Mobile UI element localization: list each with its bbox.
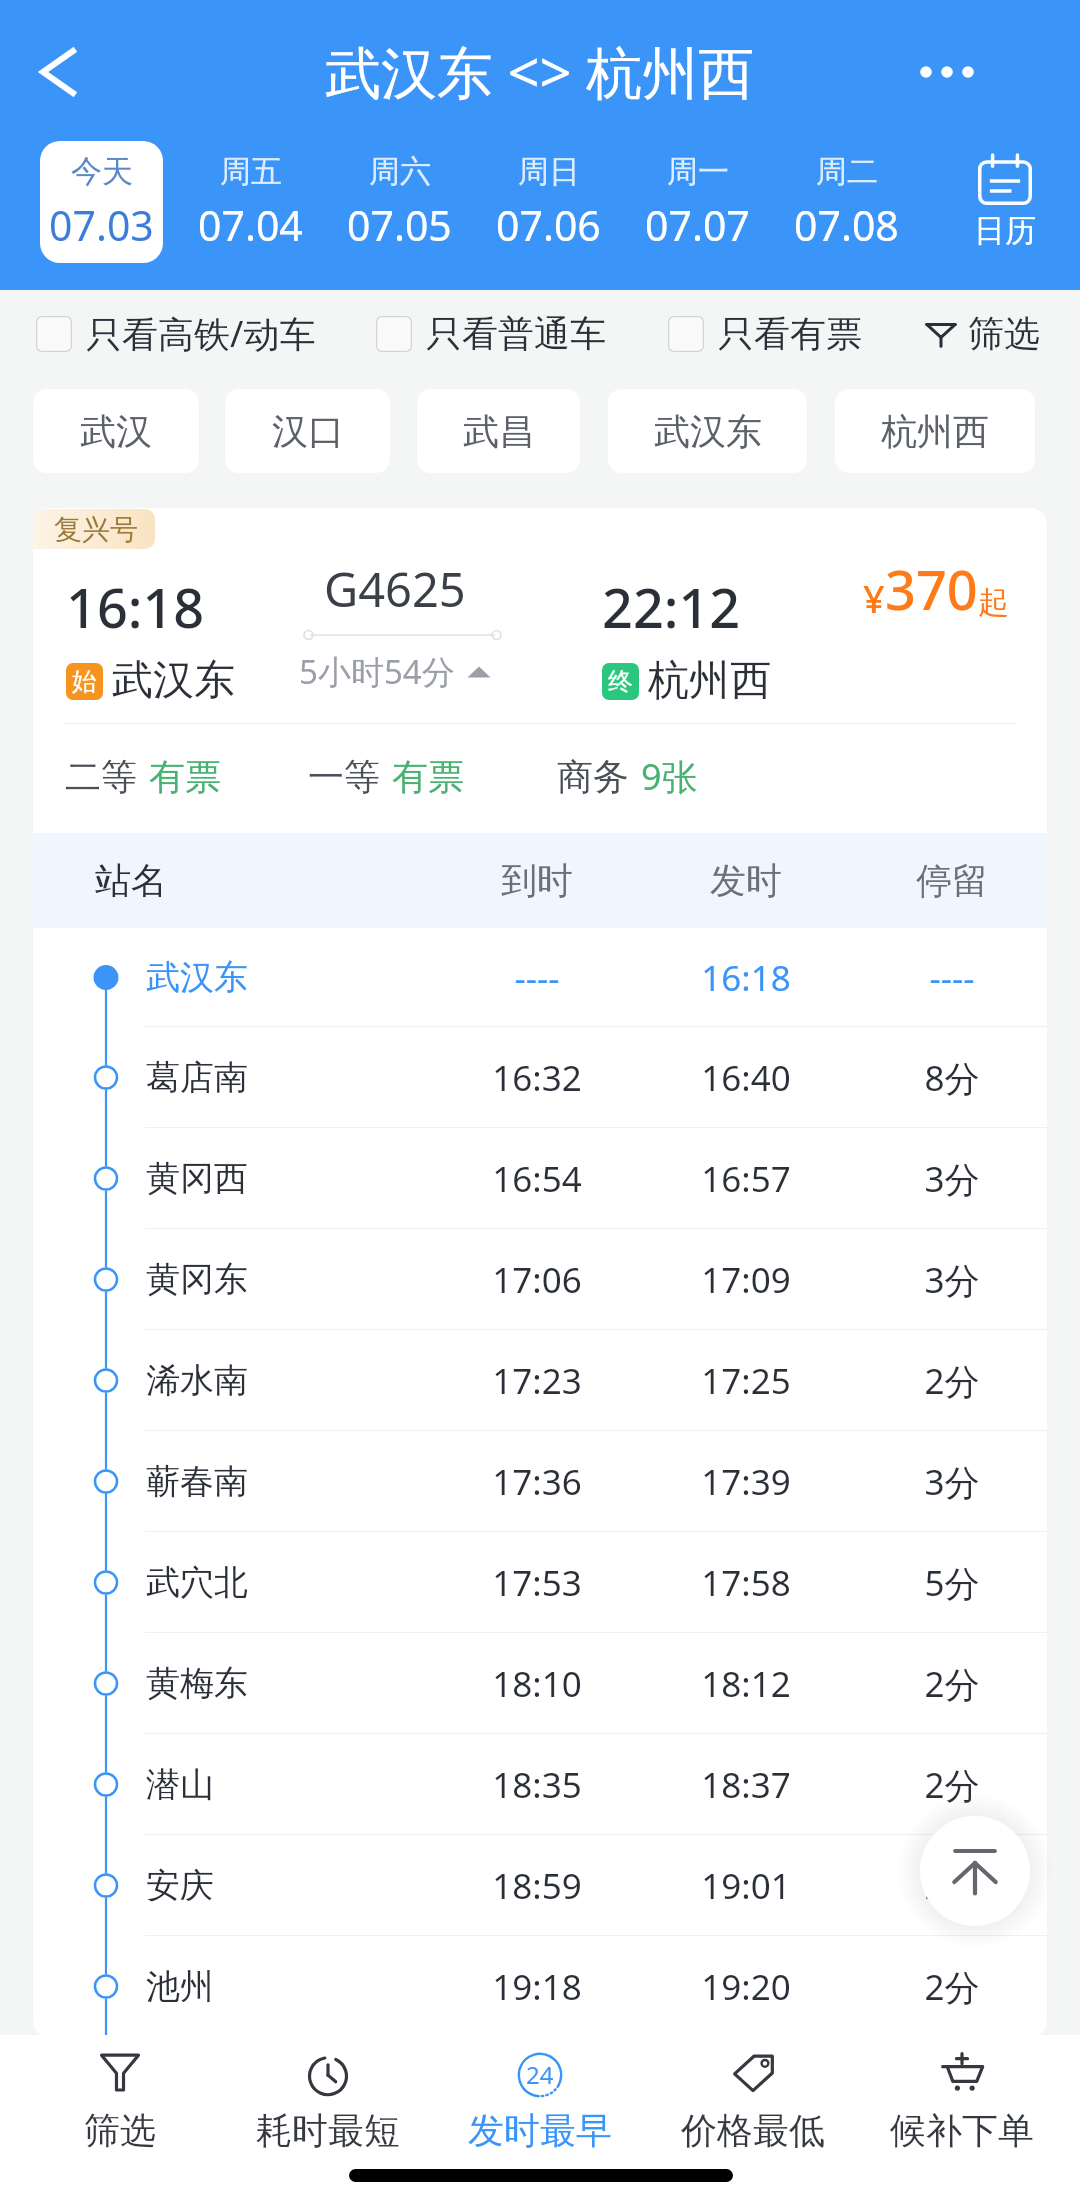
button[interactable]: 只看有票 <box>668 311 862 356</box>
button[interactable]: 黄冈西 <box>33 1128 1047 1229</box>
button[interactable]: Back <box>17 25 97 105</box>
staticText: 5分 <box>852 1559 1047 1607</box>
staticText: 17:25 <box>646 1357 846 1405</box>
staticText: 日历 <box>974 211 1036 250</box>
button[interactable]: 武穴北 <box>33 1532 1047 1633</box>
staticText: 3分 <box>852 1155 1047 1203</box>
staticText: 浠水南 <box>146 1359 248 1402</box>
staticText: 到时 <box>437 858 637 903</box>
staticText: 16:18 <box>646 954 846 1002</box>
button[interactable]: 今天 <box>40 141 163 263</box>
staticText: 葛店南 <box>146 1056 248 1099</box>
button[interactable]: 周六 <box>329 141 469 263</box>
staticText: 24 <box>526 2058 554 2091</box>
staticText: 始 <box>72 666 97 697</box>
button[interactable]: 潜山 <box>33 1734 1047 1835</box>
staticText: 16:32 <box>437 1054 637 1102</box>
button[interactable]: 商务 <box>557 752 698 801</box>
button[interactable]: 筛选 <box>25 2040 215 2160</box>
button[interactable]: 周五 <box>180 141 320 263</box>
staticText: 07.05 <box>347 197 452 253</box>
button[interactable]: 二等 <box>65 754 221 799</box>
staticText: 18:10 <box>437 1660 637 1708</box>
button[interactable]: Scroll to top <box>920 1816 1030 1926</box>
staticText: 17:06 <box>437 1256 637 1304</box>
staticText: 19:01 <box>646 1862 846 1910</box>
button[interactable]: 只看普通车 <box>376 311 606 356</box>
button[interactable]: 武汉东 <box>608 389 807 473</box>
staticText: 3分 <box>852 1458 1047 1506</box>
staticText: 16:54 <box>437 1155 637 1203</box>
button[interactable]: 周二 <box>776 141 916 263</box>
staticText: 07.08 <box>794 197 899 253</box>
button[interactable]: 筛选 <box>924 311 1040 356</box>
staticText: 商务 <box>557 754 629 799</box>
button[interactable]: 武汉东 <box>33 928 1047 1027</box>
button[interactable]: 黄冈东 <box>33 1229 1047 1330</box>
button[interactable]: 只看高铁/动车 <box>36 309 316 358</box>
staticText: 汉口 <box>272 409 344 454</box>
button[interactable]: 一等 <box>308 754 464 799</box>
button[interactable]: 安庆 <box>33 1835 1047 1936</box>
staticText: 黄梅东 <box>146 1662 248 1705</box>
button[interactable]: 黄梅东 <box>33 1633 1047 1734</box>
button[interactable]: 周日 <box>478 141 618 263</box>
button[interactable]: 浠水南 <box>33 1330 1047 1431</box>
staticText: 周五 <box>220 152 282 191</box>
staticText: 17:36 <box>437 1458 637 1506</box>
staticText: 杭州西 <box>881 409 989 454</box>
button[interactable]: 候补下单 <box>867 2040 1057 2160</box>
staticText: 武汉东 <box>146 956 248 999</box>
staticText: 武汉东 <box>112 655 235 707</box>
button[interactable]: 日历 <box>940 141 1070 263</box>
staticText: 17:39 <box>646 1458 846 1506</box>
staticText: 16:40 <box>646 1054 846 1102</box>
button[interactable]: 池州 <box>33 1936 1047 2037</box>
staticText: 07.03 <box>49 197 154 253</box>
button[interactable]: 汉口 <box>225 389 390 473</box>
button[interactable]: 武昌 <box>417 389 580 473</box>
staticText: 5小时54分 <box>299 649 455 694</box>
staticText: 筛选 <box>968 311 1040 356</box>
staticText: 今天 <box>71 152 133 191</box>
button[interactable]: 24 <box>445 2040 635 2160</box>
button[interactable]: 蕲春南 <box>33 1431 1047 1532</box>
staticText: 18:37 <box>646 1761 846 1809</box>
staticText: 蕲春南 <box>146 1460 248 1503</box>
button[interactable]: 周一 <box>627 141 767 263</box>
button[interactable]: More options <box>892 22 1002 122</box>
staticText: 22:12 <box>602 570 741 644</box>
staticText: 16:18 <box>66 570 205 644</box>
staticText: 2分 <box>852 1660 1047 1708</box>
staticText: 黄冈西 <box>146 1157 248 1200</box>
staticText: 17:23 <box>437 1357 637 1405</box>
staticText: 只看高铁/动车 <box>86 309 316 358</box>
staticText: 3分 <box>852 1256 1047 1304</box>
staticText: 发时最早 <box>468 2108 612 2153</box>
staticText: 复兴号 <box>54 512 138 547</box>
staticText: 周六 <box>369 152 431 191</box>
staticText: 周日 <box>518 152 580 191</box>
staticText: 有票 <box>149 754 221 799</box>
button[interactable]: 武汉 <box>33 389 199 473</box>
staticText: 17:53 <box>437 1559 637 1607</box>
button[interactable]: 葛店南 <box>33 1027 1047 1128</box>
staticText: ---- <box>437 954 637 1002</box>
staticText: 07.07 <box>645 197 750 253</box>
button[interactable]: 价格最低 <box>658 2040 848 2160</box>
staticText: 武穴北 <box>146 1561 248 1604</box>
staticText: 2分 <box>852 1963 1047 2011</box>
staticText: 9张 <box>641 752 698 801</box>
staticText: 武汉东 <box>654 409 762 454</box>
staticText: 发时 <box>646 858 846 903</box>
button[interactable]: 耗时最短 <box>233 2040 423 2160</box>
staticText: 只看普通车 <box>426 311 606 356</box>
staticText: 2分 <box>852 1357 1047 1405</box>
staticText: 武昌 <box>463 409 535 454</box>
button[interactable]: 杭州西 <box>835 389 1035 473</box>
staticText: 候补下单 <box>890 2108 1034 2153</box>
staticText: 池州 <box>146 1965 214 2008</box>
staticText: 只看有票 <box>718 311 862 356</box>
staticText: 黄冈东 <box>146 1258 248 1301</box>
staticText: 07.04 <box>198 197 303 253</box>
